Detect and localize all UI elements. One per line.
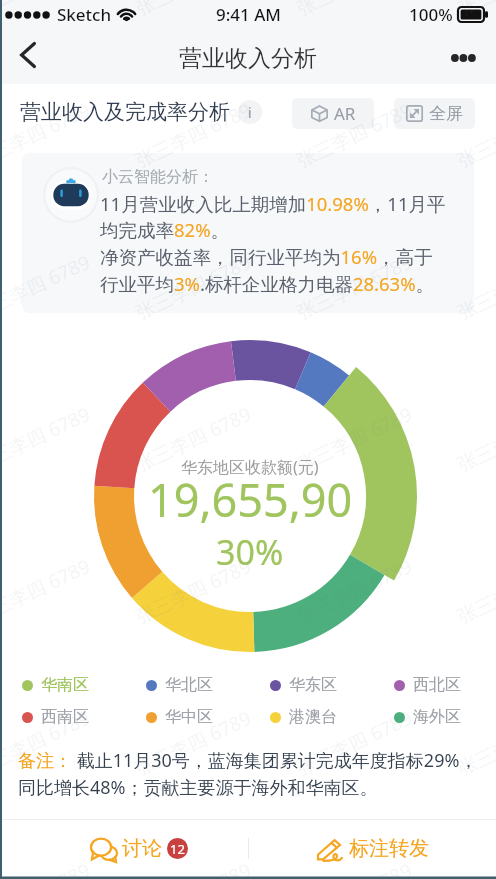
button[interactable]: 华南区	[0, 669, 124, 701]
staticText: 100%	[409, 3, 453, 26]
button[interactable]: Back	[0, 34, 56, 84]
staticText: 西北区	[413, 675, 461, 695]
button[interactable]: 海外区	[372, 701, 496, 733]
staticText: 张三李四 6789	[292, 0, 417, 21]
staticText: 张三李四 6789	[131, 401, 256, 477]
staticText: i	[248, 103, 252, 122]
staticText: 张三李四 6789	[292, 401, 417, 477]
button[interactable]: More options	[440, 34, 496, 84]
staticText: 30%	[216, 529, 284, 575]
button[interactable]: 华北区	[124, 669, 248, 701]
staticText: AR	[334, 102, 356, 125]
staticText: 华中区	[165, 707, 213, 727]
staticText: 张三李四 6789	[292, 249, 417, 325]
staticText: 华南区	[41, 675, 89, 695]
staticText: 12	[170, 840, 185, 858]
staticText: 张三李四 6789	[0, 0, 95, 21]
staticText: 华北区	[165, 675, 213, 695]
button[interactable]: 讨论	[0, 820, 248, 877]
staticText: 备注： 截止11月30号，蓝海集团累计完成年度指标29%， 同比增长48%；贡献…	[18, 748, 478, 799]
staticText: 张三李四 6789	[0, 249, 95, 325]
staticText: 标注转发	[349, 836, 429, 861]
staticText: 张三李四 6789	[453, 0, 496, 21]
staticText: 港澳台	[289, 707, 337, 727]
staticText: 张三李四 6789	[0, 857, 95, 879]
staticText: 11月营业收入比上期增加10.98%，11月平 均完成率82%。 净资产收益率，…	[100, 191, 474, 297]
staticText: 西南区	[41, 707, 89, 727]
staticText: 华东地区收款额(元)	[181, 456, 319, 478]
staticText: 张三李四 6789	[292, 97, 417, 173]
button[interactable]: 华中区	[124, 701, 248, 733]
staticText: 讨论	[122, 836, 162, 861]
staticText: 张三李四 6789	[292, 553, 417, 629]
staticText: 张三李四 6789	[292, 705, 417, 781]
staticText: 张三李四 6789	[292, 857, 417, 879]
staticText: 全屏	[429, 103, 463, 124]
staticText: 张三李四 6789	[131, 0, 256, 21]
staticText: 张三李四 6789	[453, 857, 496, 879]
staticText: 张三李四 6789	[0, 553, 95, 629]
staticText: 张三李四 6789	[131, 553, 256, 629]
staticText: 海外区	[413, 707, 461, 727]
button[interactable]: 西南区	[0, 701, 124, 733]
staticText: 张三李四 6789	[0, 97, 95, 173]
button[interactable]: Info	[238, 100, 262, 124]
button[interactable]: AR view	[292, 98, 374, 129]
staticText: 张三李四 6789	[131, 97, 256, 173]
staticText: Sketch	[57, 3, 112, 26]
staticText: 张三李四 6789	[0, 705, 95, 781]
button[interactable]: 港澳台	[248, 701, 372, 733]
staticText: 张三李四 6789	[453, 249, 496, 325]
button[interactable]: 标注转发	[248, 820, 496, 877]
staticText: 营业收入分析	[179, 44, 317, 73]
staticText: 华东区	[289, 675, 337, 695]
button[interactable]: Fullscreen	[394, 98, 475, 129]
staticText: 小云智能分析：	[102, 167, 214, 187]
staticText: 张三李四 6789	[0, 401, 95, 477]
staticText: 营业收入及完成率分析	[20, 99, 230, 125]
staticText: 张三李四 6789	[453, 97, 496, 173]
staticText: 张三李四 6789	[453, 705, 496, 781]
button[interactable]: 华东区	[248, 669, 372, 701]
staticText: 19,655,90	[148, 469, 353, 530]
staticText: 张三李四 6789	[131, 249, 256, 325]
staticText: 张三李四 6789	[131, 857, 256, 879]
button[interactable]: 西北区	[372, 669, 496, 701]
staticText: 9:41 AM	[216, 3, 281, 26]
staticText: 张三李四 6789	[131, 705, 256, 781]
